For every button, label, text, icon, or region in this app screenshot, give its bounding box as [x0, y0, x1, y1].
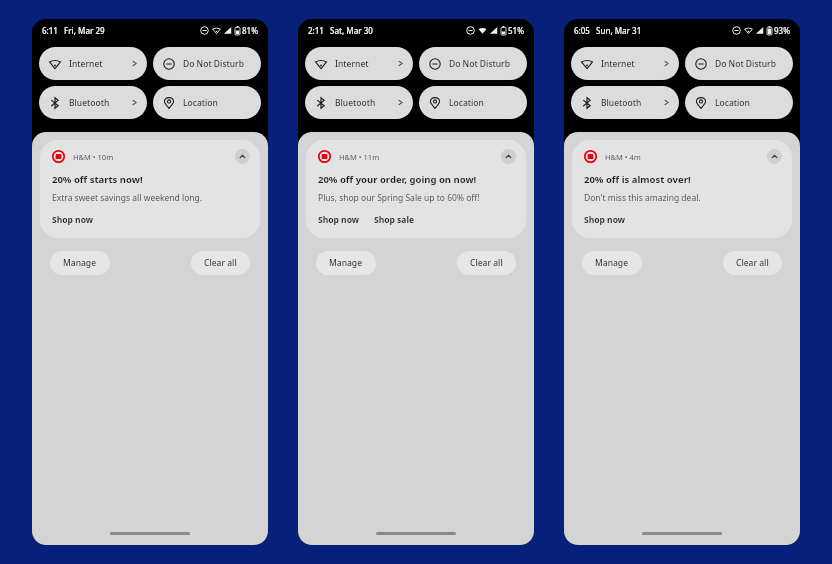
staticText: 51% — [508, 25, 524, 36]
button[interactable]: Do Not Disturb — [153, 47, 261, 80]
button[interactable]: Internet — [571, 47, 679, 80]
staticText: H&M • 11m — [339, 152, 380, 162]
staticText: Clear all — [470, 257, 503, 269]
staticText: 6:05 — [574, 25, 590, 36]
staticText: 93% — [774, 25, 790, 36]
staticText: 20% off starts now! — [52, 173, 143, 186]
button[interactable]: Location — [419, 86, 527, 119]
button[interactable]: Internet — [305, 47, 413, 80]
button[interactable]: Bluetooth — [39, 86, 147, 119]
staticText: Extra sweet savings all weekend long. — [52, 192, 203, 204]
staticText: Location — [183, 97, 218, 109]
staticText: Manage — [63, 257, 97, 269]
button[interactable]: Collapse notification — [767, 149, 782, 164]
staticText: Fri, Mar 29 — [64, 25, 105, 36]
staticText: Internet — [601, 58, 635, 70]
button[interactable]: Manage — [316, 251, 376, 275]
button[interactable]: Shop sale — [374, 214, 415, 226]
button[interactable]: H&M • 4m — [572, 140, 792, 238]
staticText: Don't miss this amazing deal. — [584, 192, 701, 204]
button[interactable]: H&M • 11m — [306, 140, 526, 238]
button[interactable]: H&M • 10m — [40, 140, 260, 238]
staticText: Shop sale — [374, 214, 415, 226]
staticText: 20% off your order, going on now! — [318, 173, 477, 186]
staticText: Location — [715, 97, 750, 109]
staticText: Shop now — [318, 214, 360, 226]
staticText: Sun, Mar 31 — [596, 25, 642, 36]
button[interactable]: Collapse notification — [501, 149, 516, 164]
staticText: Location — [449, 97, 484, 109]
staticText: Manage — [329, 257, 363, 269]
button[interactable]: Bluetooth — [571, 86, 679, 119]
button[interactable]: Location — [153, 86, 261, 119]
staticText: Bluetooth — [601, 97, 642, 109]
staticText: 6:11 — [42, 25, 58, 36]
button[interactable]: Collapse notification — [235, 149, 250, 164]
staticText: Shop now — [52, 214, 94, 226]
staticText: Internet — [69, 58, 103, 70]
staticText: H&M • 4m — [605, 152, 641, 162]
staticText: Do Not Disturb — [715, 58, 776, 70]
staticText: Manage — [595, 257, 629, 269]
staticText: Sat, Mar 30 — [330, 25, 373, 36]
button[interactable]: Shop now — [584, 214, 626, 226]
button[interactable]: Shop now — [52, 214, 94, 226]
staticText: 2:11 — [308, 25, 324, 36]
staticText: 20% off is almost over! — [584, 173, 691, 186]
button[interactable]: Bluetooth — [305, 86, 413, 119]
button[interactable]: Clear all — [723, 251, 782, 275]
staticText: Clear all — [204, 257, 237, 269]
staticText: Bluetooth — [69, 97, 110, 109]
button[interactable]: Location — [685, 86, 793, 119]
staticText: Do Not Disturb — [449, 58, 510, 70]
staticText: 81% — [242, 25, 258, 36]
button[interactable]: Do Not Disturb — [419, 47, 527, 80]
button[interactable]: Internet — [39, 47, 147, 80]
button[interactable]: Do Not Disturb — [685, 47, 793, 80]
staticText: Bluetooth — [335, 97, 376, 109]
button[interactable]: Manage — [582, 251, 642, 275]
staticText: Shop now — [584, 214, 626, 226]
button[interactable]: Clear all — [457, 251, 516, 275]
button[interactable]: Manage — [50, 251, 110, 275]
staticText: Plus, shop our Spring Sale up to 60% off… — [318, 192, 480, 204]
staticText: H&M • 10m — [73, 152, 114, 162]
staticText: Do Not Disturb — [183, 58, 244, 70]
staticText: Internet — [335, 58, 369, 70]
button[interactable]: Shop now — [318, 214, 360, 226]
staticText: Clear all — [736, 257, 769, 269]
button[interactable]: Clear all — [191, 251, 250, 275]
